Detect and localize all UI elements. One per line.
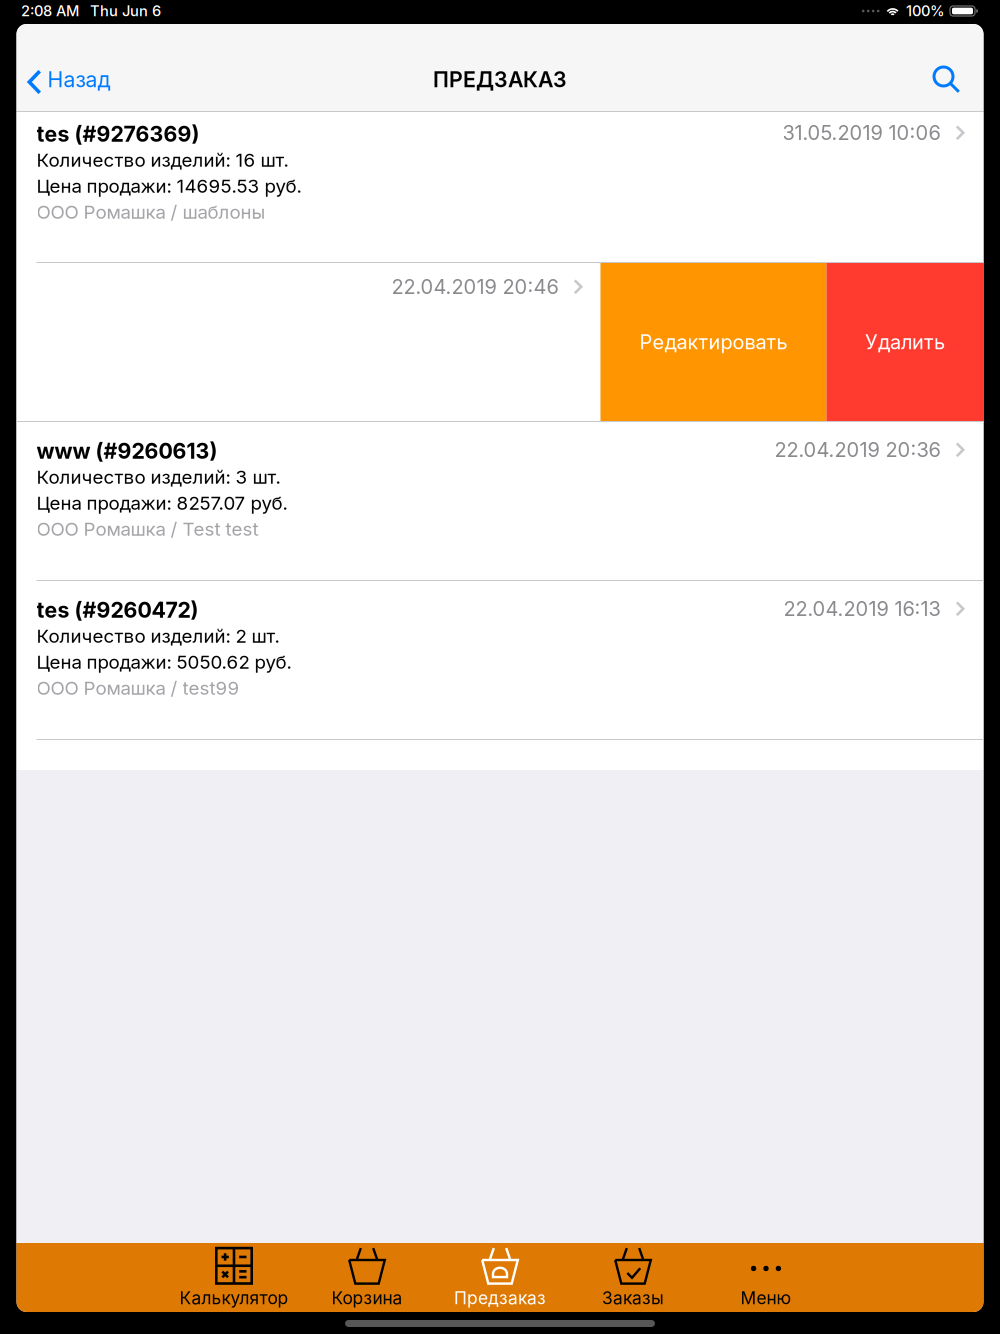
staticText: www (#9260613) [36, 438, 217, 464]
staticText: 31.05.2019 10:06 [782, 121, 940, 145]
staticText: 22.04.2019 20:36 [774, 438, 940, 462]
staticText: 22.04.2019 16:13 [783, 597, 940, 621]
staticText: Заказы [602, 1288, 664, 1308]
staticText: Цена продажи: 8257.07 руб. [36, 492, 287, 514]
button[interactable]: Предзаказ [433, 1243, 566, 1312]
button[interactable]: Search [912, 47, 983, 111]
button[interactable]: Редактировать [600, 263, 826, 421]
button[interactable]: Калькулятор [167, 1243, 300, 1312]
staticText: Удалить [865, 330, 945, 354]
button[interactable]: tes (#9260472) [16, 581, 983, 739]
button[interactable]: www (#9260613) [16, 422, 983, 580]
staticText: Корзина [331, 1288, 402, 1308]
staticText: tes (#9260472) [36, 597, 198, 623]
staticText: Количество изделий: 2 шт. [36, 625, 279, 647]
staticText: Количество изделий: 3 шт. [36, 466, 280, 488]
staticText: ООО Ромашка / test99 [36, 677, 239, 699]
button[interactable]: Заказы [566, 1243, 699, 1312]
staticText: Количество изделий: 16 шт. [36, 149, 288, 171]
staticText: ООО Ромашка / Test test [36, 518, 258, 540]
staticText: Thu Jun 6 [90, 2, 161, 20]
staticText: Редактировать [639, 330, 787, 354]
staticText: Меню [740, 1288, 791, 1308]
staticText: 2:08 AM [21, 2, 79, 20]
staticText: Калькулятор [179, 1288, 288, 1308]
staticText: Цена продажи: 5050.62 руб. [36, 651, 291, 673]
staticText: 100% [906, 2, 945, 20]
staticText: Назад [47, 67, 110, 92]
staticText: ПРЕДЗАКАЗ [433, 67, 567, 92]
button[interactable]: Меню [699, 1243, 832, 1312]
button[interactable]: tes (#9276369) [16, 112, 983, 262]
button[interactable]: Удалить [826, 263, 983, 421]
staticText: tes (#9276369) [36, 121, 199, 147]
staticText: ООО Ромашка / шаблоны [36, 201, 265, 223]
button[interactable]: Корзина [300, 1243, 433, 1312]
staticText: 22.04.2019 20:46 [391, 275, 558, 299]
button[interactable]: Назад [16, 46, 120, 113]
staticText: Предзаказ [454, 1288, 546, 1308]
staticText: Цена продажи: 14695.53 руб. [36, 175, 301, 197]
